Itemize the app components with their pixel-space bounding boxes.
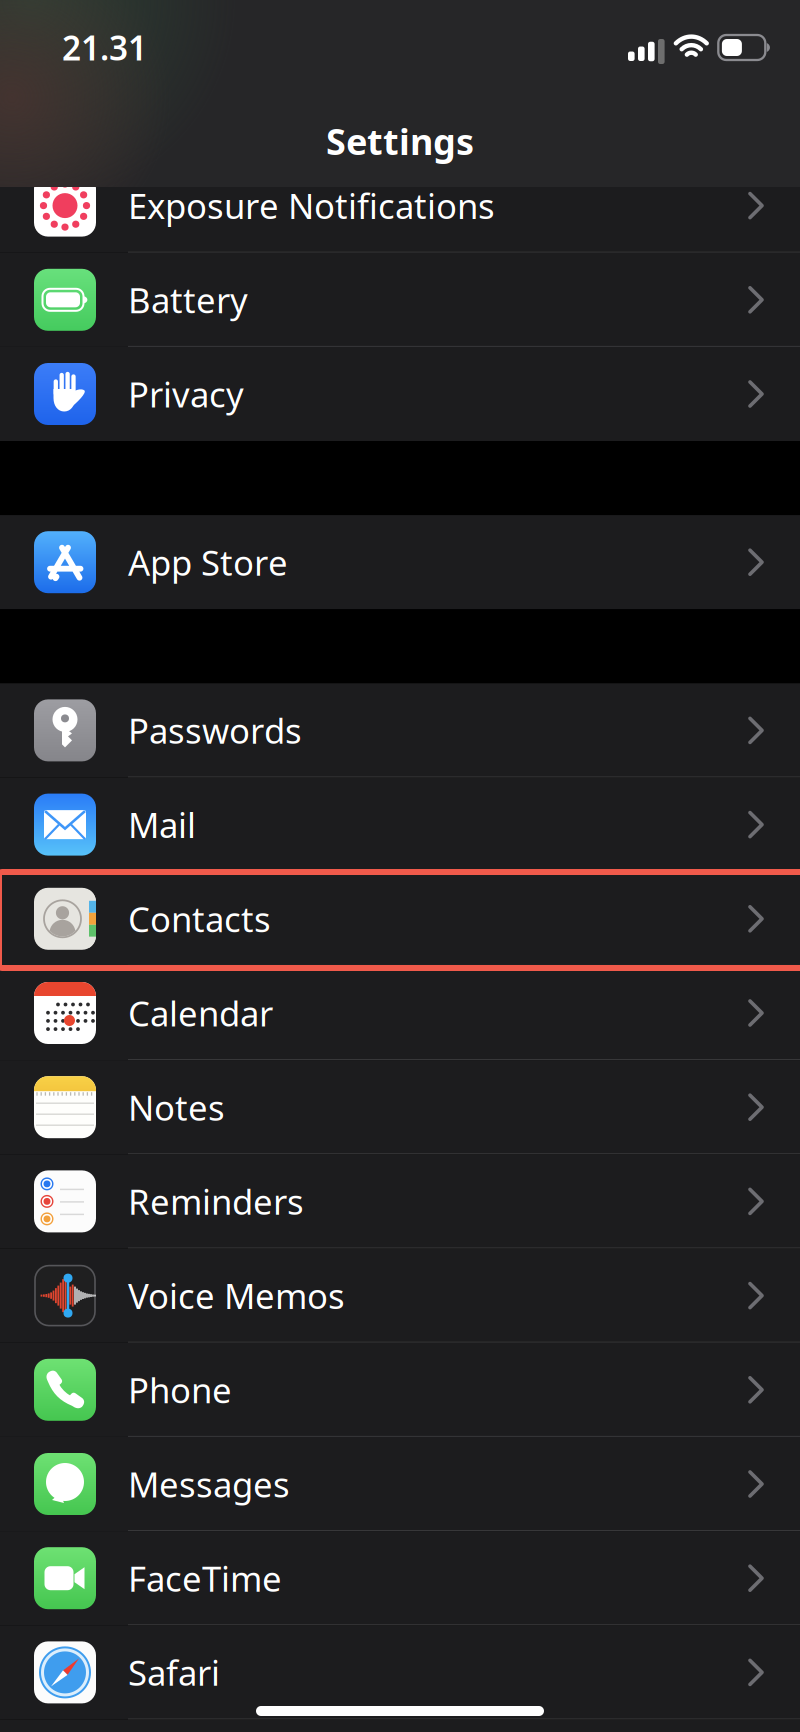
staticText: Notes [128, 1084, 225, 1130]
button[interactable]: App Store [0, 515, 800, 609]
button[interactable]: Calendar [0, 966, 800, 1060]
staticText: Voice Memos [128, 1273, 345, 1319]
button[interactable]: Battery [0, 253, 800, 347]
button[interactable]: Privacy [0, 347, 800, 441]
button[interactable]: FaceTime [0, 1531, 800, 1625]
staticText: FaceTime [128, 1555, 282, 1601]
button[interactable]: Voice Memos [0, 1248, 800, 1343]
button[interactable]: Passwords [0, 683, 800, 777]
staticText: Settings [326, 117, 474, 165]
staticText: Contacts [128, 896, 271, 942]
button[interactable]: Exposure Notifications [0, 158, 800, 253]
button[interactable]: Messages [0, 1437, 800, 1531]
staticText: Battery [128, 277, 248, 323]
staticText: Calendar [128, 990, 273, 1036]
button[interactable]: Contacts [0, 872, 800, 966]
staticText: Privacy [128, 371, 244, 417]
staticText: Reminders [128, 1178, 304, 1224]
staticText: Phone [128, 1367, 232, 1413]
button[interactable]: Notes [0, 1060, 800, 1154]
staticText: Messages [128, 1461, 290, 1507]
button[interactable]: Reminders [0, 1154, 800, 1248]
staticText: Safari [128, 1649, 220, 1695]
button[interactable]: Mail [0, 777, 800, 872]
staticText: Exposure Notifications [128, 183, 495, 229]
button[interactable]: Phone [0, 1343, 800, 1437]
staticText: 21.31 [62, 25, 147, 70]
staticText: Mail [128, 802, 196, 848]
staticText: App Store [128, 539, 288, 585]
staticText: Passwords [128, 707, 302, 753]
button[interactable]: Safari [0, 1625, 800, 1719]
